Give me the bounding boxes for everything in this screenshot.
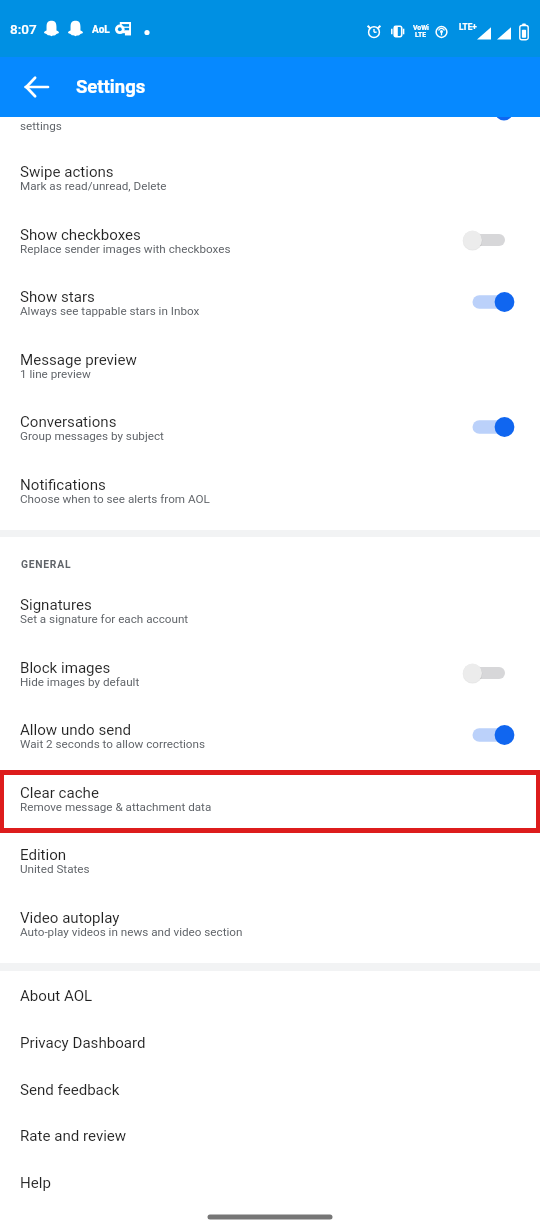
button[interactable]: Clear cache <box>0 763 540 826</box>
button[interactable]: Notifications <box>0 455 540 518</box>
button[interactable]: Help <box>0 1157 540 1204</box>
staticText: Auto-play videos in news and video secti… <box>20 925 243 939</box>
button[interactable]: Toggle on <box>456 411 522 443</box>
button[interactable]: Toggle off <box>456 657 522 689</box>
staticText: Mark as read/unread, Delete <box>20 179 167 193</box>
button[interactable]: Edition <box>0 825 540 888</box>
button[interactable]: settings <box>0 117 540 142</box>
staticText: Edition <box>20 846 67 864</box>
staticText: Video autoplay <box>20 909 120 927</box>
button[interactable]: Signatures <box>0 575 540 638</box>
button[interactable]: Send feedback <box>0 1064 540 1111</box>
staticText: GENERAL <box>21 558 72 570</box>
staticText: Signatures <box>20 596 92 614</box>
staticText: Set a signature for each account <box>20 612 189 626</box>
staticText: Settings <box>76 76 146 98</box>
staticText: Notifications <box>20 476 106 494</box>
staticText: Replace sender images with checkboxes <box>20 242 231 256</box>
button[interactable]: Toggle on <box>456 719 522 751</box>
staticText: Block images <box>20 659 111 677</box>
staticText: Privacy Dashboard <box>20 1034 146 1052</box>
staticText: LTE <box>415 31 427 39</box>
staticText: Show stars <box>20 288 95 306</box>
staticText: Swipe actions <box>20 163 114 181</box>
button[interactable]: Show stars <box>0 267 540 330</box>
staticText: 8:07 <box>10 21 37 37</box>
staticText: Clear cache <box>20 784 99 802</box>
button[interactable]: Message preview <box>0 330 540 393</box>
button[interactable]: Block images <box>0 638 540 701</box>
button[interactable]: Privacy Dashboard <box>0 1017 540 1064</box>
button[interactable]: Allow undo send <box>0 700 540 763</box>
button[interactable]: Swipe actions <box>0 142 540 205</box>
staticText: About AOL <box>20 987 93 1005</box>
button[interactable]: Video autoplay <box>0 888 540 951</box>
staticText: Help <box>20 1174 51 1192</box>
button[interactable]: About AOL <box>0 970 540 1017</box>
staticText: Remove message & attachment data <box>20 800 212 814</box>
staticText: settings <box>20 119 62 133</box>
staticText: Always see tappable stars in Inbox <box>20 304 200 318</box>
button[interactable]: Back <box>12 63 60 111</box>
staticText: Show checkboxes <box>20 226 141 244</box>
staticText: VoWi <box>413 24 429 32</box>
button[interactable]: Show checkboxes <box>0 205 540 268</box>
button[interactable]: Rate and review <box>0 1110 540 1157</box>
staticText: Choose when to see alerts from AOL <box>20 492 210 506</box>
staticText: Rate and review <box>20 1127 127 1145</box>
staticText: LTE+ <box>459 22 477 32</box>
button[interactable]: Toggle off <box>456 224 522 256</box>
button[interactable]: Toggle on <box>456 286 522 318</box>
staticText: Group messages by subject <box>20 429 164 443</box>
staticText: Allow undo send <box>20 721 132 739</box>
button[interactable]: Conversations <box>0 392 540 455</box>
staticText: Hide images by default <box>20 675 140 689</box>
staticText: Conversations <box>20 413 117 431</box>
staticText: Send feedback <box>20 1081 120 1099</box>
staticText: AoL <box>92 24 110 36</box>
staticText: 1 line preview <box>20 367 91 381</box>
staticText: Wait 2 seconds to allow corrections <box>20 737 205 751</box>
staticText: Message preview <box>20 351 137 369</box>
staticText: United States <box>20 862 90 876</box>
